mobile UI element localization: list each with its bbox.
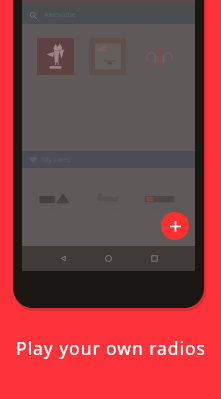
staticText: My Likes xyxy=(42,155,71,165)
staticText: 240 listeners xyxy=(148,218,172,223)
staticText: Awesome xyxy=(44,10,77,20)
button[interactable]: Radio FM xyxy=(37,185,74,223)
other: Search xyxy=(29,11,38,20)
button[interactable]: Add radio xyxy=(161,212,189,240)
button[interactable]: Radio FM xyxy=(141,185,178,223)
staticText: Play your own radios xyxy=(16,336,206,360)
button[interactable]: Radio FM xyxy=(89,38,126,89)
button[interactable]: Back xyxy=(59,254,68,263)
button[interactable]: Recent apps xyxy=(150,254,159,263)
button[interactable]: Home xyxy=(104,254,113,263)
staticText: Radio FM xyxy=(149,211,171,218)
button[interactable]: Radio FM xyxy=(141,38,178,89)
button[interactable]: Radio FM xyxy=(37,38,74,89)
